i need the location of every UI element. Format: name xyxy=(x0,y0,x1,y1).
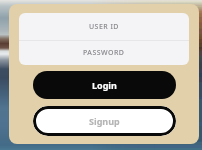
staticText: USER ID xyxy=(89,22,119,32)
button[interactable]: PASSWORD xyxy=(19,41,189,65)
button[interactable]: USER ID xyxy=(19,13,189,40)
button[interactable]: Login xyxy=(33,71,176,99)
button[interactable]: Signup xyxy=(33,106,176,136)
staticText: Login xyxy=(92,79,117,91)
staticText: Signup xyxy=(89,115,120,127)
staticText: PASSWORD xyxy=(83,48,125,58)
